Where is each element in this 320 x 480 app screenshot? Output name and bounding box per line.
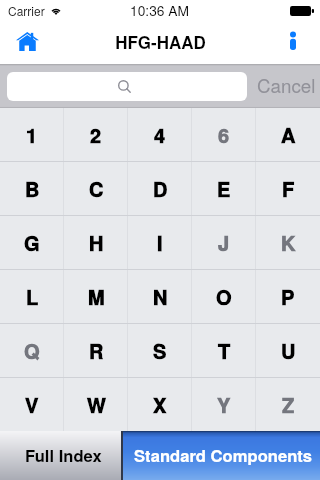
staticText: W <box>87 390 106 419</box>
staticText: 2 <box>90 120 102 149</box>
button[interactable]: M <box>64 270 128 323</box>
staticText: H <box>89 228 104 257</box>
button[interactable]: 1 <box>0 108 64 161</box>
button[interactable]: Standard Components <box>121 431 320 480</box>
staticText: O <box>216 282 232 311</box>
staticText: 1 <box>26 120 38 149</box>
staticText: G <box>24 228 40 257</box>
button[interactable]: P <box>256 270 320 323</box>
button[interactable]: V <box>0 378 64 431</box>
button[interactable]: B <box>0 162 64 215</box>
staticText: F <box>282 174 295 203</box>
staticText: Y <box>217 390 231 419</box>
staticText: Cancel <box>257 71 316 98</box>
button[interactable]: T <box>192 324 256 377</box>
staticText: D <box>153 174 168 203</box>
staticText: M <box>88 282 105 311</box>
staticText: E <box>217 174 231 203</box>
button[interactable]: Cancel <box>247 64 320 108</box>
staticText: P <box>281 282 295 311</box>
button[interactable] <box>7 72 247 101</box>
staticText: R <box>89 336 104 365</box>
staticText: T <box>218 336 231 365</box>
staticText: I <box>157 228 163 257</box>
staticText: V <box>25 390 39 419</box>
staticText: A <box>281 120 296 149</box>
button[interactable]: S <box>128 324 192 377</box>
staticText: Full Index <box>25 443 102 467</box>
button[interactable]: Info <box>276 20 310 64</box>
staticText: B <box>25 174 40 203</box>
button[interactable]: Y <box>192 378 256 431</box>
staticText: Carrier <box>8 2 45 19</box>
staticText: 4 <box>154 120 166 149</box>
staticText: Standard Components <box>134 443 313 467</box>
button[interactable]: Q <box>0 324 64 377</box>
staticText: X <box>153 390 167 419</box>
staticText: L <box>26 282 39 311</box>
button[interactable]: 2 <box>64 108 128 161</box>
button[interactable]: U <box>256 324 320 377</box>
button[interactable]: Z <box>256 378 320 431</box>
button[interactable]: R <box>64 324 128 377</box>
staticText: U <box>281 336 296 365</box>
button[interactable]: W <box>64 378 128 431</box>
button[interactable]: J <box>192 216 256 269</box>
staticText: Q <box>24 336 40 365</box>
staticText: 6 <box>218 120 230 149</box>
button[interactable]: X <box>128 378 192 431</box>
button[interactable]: E <box>192 162 256 215</box>
staticText: K <box>281 228 296 257</box>
button[interactable]: D <box>128 162 192 215</box>
staticText: Z <box>282 390 295 419</box>
button[interactable]: I <box>128 216 192 269</box>
button[interactable]: C <box>64 162 128 215</box>
staticText: S <box>153 336 167 365</box>
button[interactable]: L <box>0 270 64 323</box>
button[interactable]: Home <box>0 20 54 64</box>
button[interactable]: N <box>128 270 192 323</box>
staticText: 10:36 AM <box>130 0 190 20</box>
button[interactable]: O <box>192 270 256 323</box>
button[interactable]: H <box>64 216 128 269</box>
staticText: C <box>89 174 104 203</box>
button[interactable]: F <box>256 162 320 215</box>
staticText: HFG-HAAD <box>115 30 206 54</box>
button[interactable]: G <box>0 216 64 269</box>
staticText: J <box>218 228 230 257</box>
button[interactable]: 6 <box>192 108 256 161</box>
button[interactable]: 4 <box>128 108 192 161</box>
staticText: N <box>153 282 168 311</box>
button[interactable]: A <box>256 108 320 161</box>
button[interactable]: Full Index <box>0 431 121 480</box>
button[interactable]: K <box>256 216 320 269</box>
